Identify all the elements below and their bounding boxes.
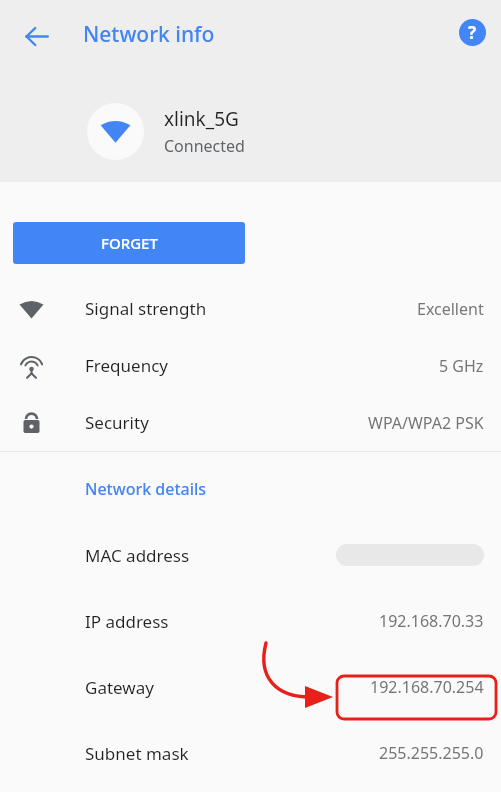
- button[interactable]: Subnet mask: [0, 720, 501, 786]
- staticText: 5 GHz: [439, 355, 484, 377]
- staticText: 192.168.70.33: [379, 610, 484, 632]
- staticText: 192.168.70.254: [370, 676, 484, 698]
- button[interactable]: FORGET: [13, 222, 245, 264]
- staticText: Connected: [164, 135, 245, 157]
- staticText: Signal strength: [85, 297, 207, 320]
- button[interactable]: MAC address: [0, 522, 501, 588]
- staticText: Subnet mask: [85, 742, 189, 765]
- staticText: Gateway: [85, 676, 154, 699]
- staticText: 255.255.255.0: [379, 742, 484, 764]
- staticText: Network info: [83, 20, 215, 49]
- button[interactable]: Frequency: [0, 337, 501, 394]
- staticText: IP address: [85, 610, 169, 633]
- button[interactable]: Back: [14, 14, 58, 58]
- staticText: Excellent: [417, 298, 484, 320]
- button[interactable]: Gateway: [0, 654, 501, 720]
- staticText: FORGET: [101, 233, 158, 253]
- staticText: xlink_5G: [164, 106, 239, 132]
- button[interactable]: Help: [452, 12, 492, 52]
- button[interactable]: Security: [0, 394, 501, 451]
- staticText: Security: [85, 411, 149, 434]
- staticText: ?: [468, 21, 477, 44]
- staticText: MAC address: [85, 544, 190, 567]
- button[interactable]: IP address: [0, 588, 501, 654]
- button[interactable]: xlink_5G: [0, 98, 501, 164]
- staticText: WPA/WPA2 PSK: [368, 412, 484, 434]
- button[interactable]: Network details: [85, 478, 207, 500]
- staticText: Frequency: [85, 354, 168, 377]
- button[interactable]: Signal strength: [0, 280, 501, 337]
